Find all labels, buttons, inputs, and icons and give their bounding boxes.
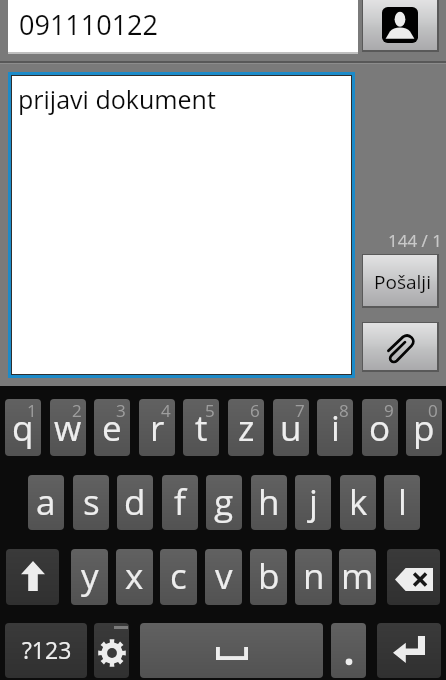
staticText: b [258, 552, 280, 600]
button[interactable]: g [206, 475, 242, 530]
staticText: r [150, 404, 165, 452]
button[interactable]: Period [331, 623, 366, 678]
staticText: c [170, 552, 187, 600]
staticText: 3 [116, 399, 126, 422]
staticText: h [258, 478, 280, 526]
button[interactable]: j [295, 475, 331, 530]
button[interactable]: 091110122 [8, 0, 358, 52]
button[interactable]: 4 [139, 399, 175, 456]
staticText: z [238, 404, 255, 452]
button[interactable]: f [162, 475, 198, 530]
button[interactable]: Backspace [387, 549, 440, 605]
staticText: t [195, 404, 208, 452]
staticText: f [174, 478, 186, 526]
staticText: 144 / 1 [354, 229, 442, 252]
button[interactable]: s [73, 475, 109, 530]
staticText: Pošalji [374, 269, 431, 295]
button[interactable]: Pošalji [363, 255, 437, 306]
staticText: m [341, 552, 374, 600]
button[interactable]: n [295, 549, 332, 605]
staticText: u [280, 404, 302, 452]
button[interactable]: 0 [406, 399, 442, 456]
staticText: prijavi dokument [18, 82, 216, 116]
staticText: 2 [72, 399, 82, 422]
staticText: s [83, 478, 100, 526]
staticText: y [81, 552, 99, 600]
staticText: 7 [295, 399, 305, 422]
staticText: 9 [384, 399, 394, 422]
staticText: e [102, 404, 122, 452]
button[interactable]: Attach file [363, 323, 437, 370]
button[interactable]: prijavi dokument [12, 76, 351, 374]
button[interactable]: 7 [273, 399, 309, 456]
button[interactable]: v [205, 549, 242, 605]
button[interactable]: a [28, 475, 64, 530]
staticText: x [125, 552, 144, 600]
button[interactable]: Choose contact [363, 0, 437, 50]
staticText: 8 [339, 399, 349, 422]
staticText: w [54, 404, 82, 452]
button[interactable]: Space [140, 623, 323, 678]
staticText: 4 [161, 399, 171, 422]
staticText: 5 [205, 399, 215, 422]
staticText: 091110122 [19, 6, 158, 43]
staticText: o [369, 404, 391, 452]
staticText: g [214, 478, 234, 526]
button[interactable]: y [71, 549, 108, 605]
button[interactable]: 9 [362, 399, 398, 456]
button[interactable]: 1 [5, 399, 41, 456]
button[interactable]: b [250, 549, 287, 605]
button[interactable]: 5 [183, 399, 219, 456]
staticText: i [331, 404, 340, 452]
button[interactable]: 3 [94, 399, 130, 456]
button[interactable]: d [117, 475, 153, 530]
staticText: 0 [428, 399, 438, 422]
button[interactable]: 8 [317, 399, 353, 456]
staticText: a [36, 478, 56, 526]
staticText: q [12, 404, 34, 452]
button[interactable]: k [340, 475, 376, 530]
staticText: j [309, 478, 318, 526]
button[interactable]: c [160, 549, 197, 605]
button[interactable]: m [339, 549, 376, 605]
staticText: ?123 [22, 634, 72, 665]
staticText: l [398, 478, 407, 526]
button[interactable]: l [384, 475, 420, 530]
staticText: n [303, 552, 325, 600]
button[interactable]: 2 [50, 399, 86, 456]
button[interactable]: Enter [377, 623, 441, 678]
staticText: 6 [250, 399, 260, 422]
button[interactable]: 6 [228, 399, 264, 456]
staticText: p [413, 404, 435, 452]
button[interactable]: Shift [6, 549, 59, 605]
button[interactable]: x [116, 549, 153, 605]
button[interactable]: h [251, 475, 287, 530]
staticText: v [215, 552, 233, 600]
staticText: d [124, 478, 146, 526]
staticText: k [349, 478, 368, 526]
button[interactable]: ?123 [5, 623, 87, 678]
staticText: 1 [27, 399, 37, 422]
button[interactable]: Settings [94, 623, 129, 678]
